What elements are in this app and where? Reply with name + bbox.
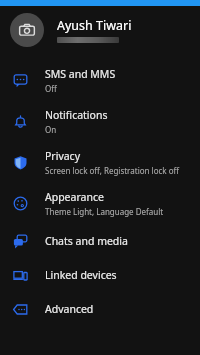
button[interactable]: Notifications bbox=[0, 101, 200, 142]
staticText: Theme Light, Language Default bbox=[45, 206, 164, 217]
other: Appearance bbox=[13, 196, 28, 211]
staticText: Ayush Tiwari bbox=[57, 17, 132, 34]
staticText: SMS and MMS bbox=[45, 67, 116, 81]
button[interactable]: Chats and media bbox=[0, 224, 200, 258]
other: Privacy bbox=[13, 155, 28, 170]
other: Linked devices bbox=[13, 268, 28, 283]
staticText: On bbox=[45, 124, 57, 135]
button[interactable]: Ayush Tiwari bbox=[0, 6, 200, 54]
button[interactable]: Appearance bbox=[0, 183, 200, 224]
button[interactable]: Linked devices bbox=[0, 258, 200, 292]
button[interactable]: Privacy bbox=[0, 142, 200, 183]
staticText: Privacy bbox=[45, 149, 81, 163]
staticText: Screen lock off, Registration lock off bbox=[45, 165, 180, 176]
other: Notifications bbox=[13, 114, 28, 129]
other: Chats and media bbox=[13, 234, 28, 249]
staticText: Linked devices bbox=[45, 268, 117, 282]
staticText: Chats and media bbox=[45, 234, 128, 248]
staticText: Off bbox=[45, 83, 57, 94]
other: Advanced bbox=[13, 302, 28, 317]
button[interactable]: Advanced bbox=[0, 292, 200, 326]
other: SMS and MMS bbox=[13, 73, 28, 88]
button[interactable]: SMS and MMS bbox=[0, 60, 200, 101]
staticText: Notifications bbox=[45, 108, 108, 122]
staticText: Appearance bbox=[45, 190, 104, 204]
staticText: Advanced bbox=[45, 302, 94, 316]
